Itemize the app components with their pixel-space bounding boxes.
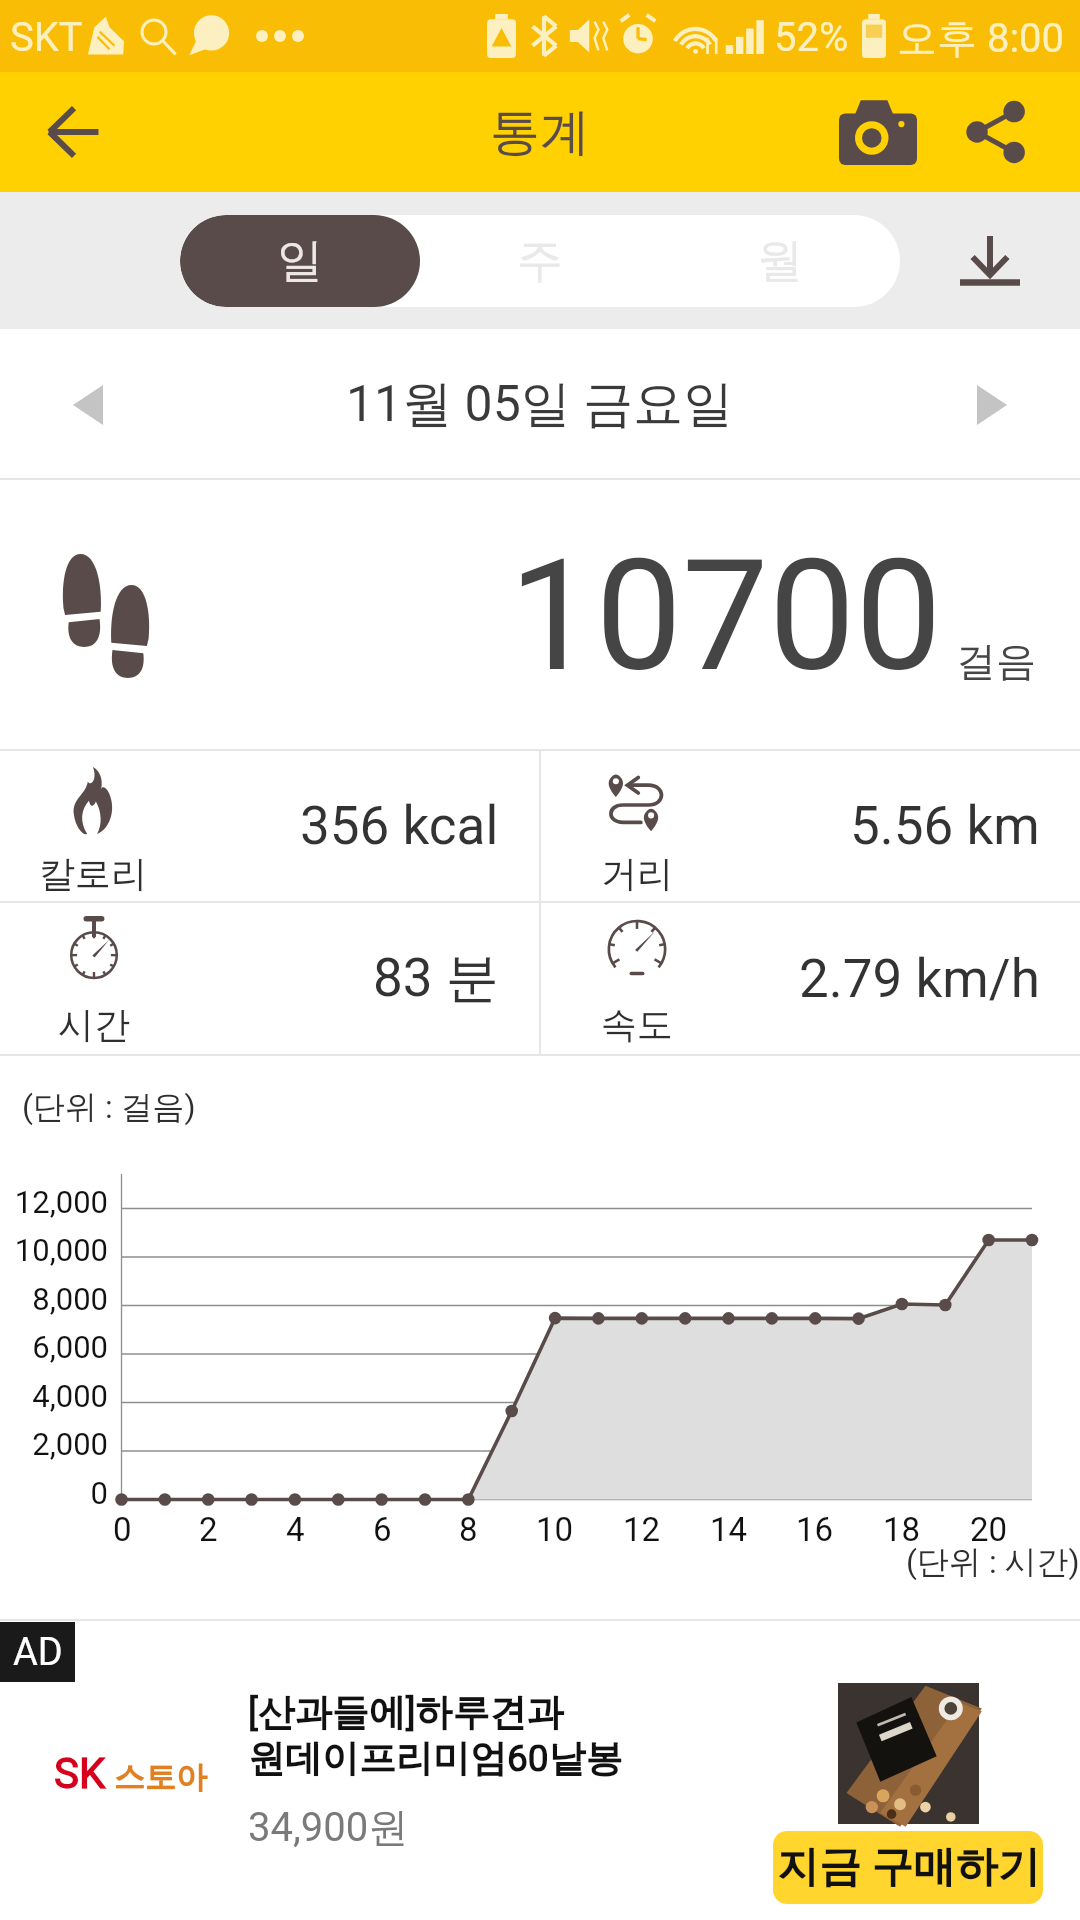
staticText: 12,000 bbox=[14, 1184, 108, 1220]
staticText: AD bbox=[13, 1630, 63, 1675]
button[interactable]: 시간 bbox=[0, 903, 539, 1054]
staticText: 오후 8:00 bbox=[897, 13, 1065, 63]
staticText: 4,000 bbox=[32, 1378, 108, 1414]
button[interactable]: 지금 구매하기 bbox=[773, 1831, 1043, 1904]
staticText: 10700 bbox=[509, 526, 942, 706]
staticText: (단위 : 시간) bbox=[906, 1542, 1080, 1582]
staticText: 0 bbox=[90, 1475, 108, 1511]
staticText: 6 bbox=[373, 1510, 392, 1549]
button[interactable]: Camera bbox=[820, 74, 936, 190]
staticText: 주 bbox=[517, 232, 563, 290]
staticText: 일 bbox=[277, 232, 323, 290]
button[interactable]: 칼로리 bbox=[0, 751, 539, 901]
staticText: 10 bbox=[536, 1510, 574, 1549]
button[interactable]: 일 bbox=[180, 215, 420, 307]
staticText: 2 bbox=[199, 1510, 218, 1549]
staticText: 속도 bbox=[601, 1002, 673, 1047]
staticText: 11월 05일 금요일 bbox=[346, 373, 734, 436]
staticText: 걸음 bbox=[956, 636, 1036, 686]
button[interactable]: 거리 bbox=[541, 751, 1080, 901]
staticText: 20 bbox=[970, 1510, 1008, 1549]
button[interactable]: AD bbox=[0, 1619, 1080, 1920]
staticText: 칼로리 bbox=[39, 851, 147, 896]
button[interactable]: Previous day bbox=[48, 365, 128, 445]
button[interactable]: Back bbox=[28, 87, 118, 177]
staticText: 2,000 bbox=[32, 1426, 108, 1462]
button[interactable]: Share bbox=[940, 77, 1050, 187]
staticText: [산과들에]하루견과 bbox=[248, 1689, 564, 1736]
staticText: SKT bbox=[10, 14, 83, 61]
staticText: 10,000 bbox=[14, 1232, 108, 1268]
staticText: 12 bbox=[623, 1510, 661, 1549]
staticText: 8,000 bbox=[32, 1281, 108, 1317]
staticText: 4 bbox=[286, 1510, 305, 1549]
staticText: 83 분 bbox=[373, 945, 499, 1012]
button[interactable]: Download bbox=[936, 210, 1044, 310]
button[interactable]: 속도 bbox=[541, 903, 1080, 1054]
staticText: 356 kcal bbox=[300, 795, 499, 857]
staticText: 거리 bbox=[601, 851, 673, 896]
staticText: 16 bbox=[796, 1510, 834, 1549]
staticText: 5.56 km bbox=[850, 795, 1040, 857]
staticText: 시간 bbox=[58, 1002, 130, 1047]
staticText: SK bbox=[54, 1749, 106, 1798]
staticText: 8 bbox=[459, 1510, 478, 1549]
staticText: 52% bbox=[774, 14, 849, 61]
staticText: 34,900원 bbox=[248, 1802, 409, 1852]
staticText: 월 bbox=[757, 232, 803, 290]
staticText: 18 bbox=[883, 1510, 921, 1549]
staticText: (단위 : 걸음) bbox=[22, 1087, 196, 1127]
staticText: 0 bbox=[113, 1510, 132, 1549]
staticText: 14 bbox=[710, 1510, 748, 1549]
button[interactable]: 월 bbox=[660, 215, 900, 307]
staticText: 스토아 bbox=[114, 1758, 207, 1797]
staticText: 지금 구매하기 bbox=[777, 1841, 1040, 1894]
staticText: 6,000 bbox=[32, 1329, 108, 1365]
staticText: 원데이프리미엄60낱봉 bbox=[248, 1735, 623, 1782]
staticText: 2.79 km/h bbox=[799, 948, 1040, 1010]
button[interactable]: 주 bbox=[420, 215, 660, 307]
staticText: 통계 bbox=[490, 101, 590, 164]
button[interactable]: Next day bbox=[952, 365, 1032, 445]
